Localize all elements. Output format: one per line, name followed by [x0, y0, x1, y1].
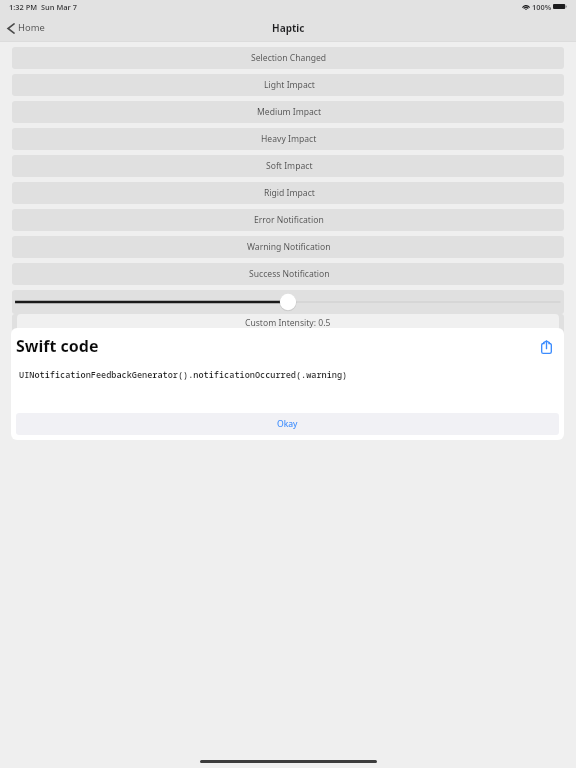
button[interactable]: Light Impact — [12, 74, 564, 96]
staticText: Error Notification — [254, 214, 324, 226]
staticText: 100% — [532, 2, 552, 12]
button[interactable]: Selection Changed — [12, 47, 564, 69]
staticText: Okay — [277, 418, 298, 430]
staticText: Selection Changed — [251, 52, 327, 64]
button[interactable]: Warning Notification — [12, 236, 564, 258]
staticText: Heavy Impact — [261, 133, 317, 145]
button[interactable]: Rigid Impact — [12, 182, 564, 204]
button[interactable]: Okay — [16, 413, 559, 435]
button[interactable]: Home — [7, 22, 45, 35]
staticText: 1:32 PM — [9, 2, 38, 12]
button[interactable]: Heavy Impact — [12, 128, 564, 150]
staticText: Soft Impact — [266, 160, 313, 172]
staticText: Home — [18, 21, 45, 34]
staticText: Success Notification — [249, 268, 330, 280]
button[interactable]: Success Notification — [12, 263, 564, 285]
staticText: Custom Intensity: 0.5 — [245, 317, 331, 329]
button[interactable]: Soft Impact — [12, 155, 564, 177]
staticText: Rigid Impact — [264, 187, 315, 199]
button[interactable]: Custom intensity slider — [12, 290, 564, 314]
button[interactable]: Medium Impact — [12, 101, 564, 123]
button[interactable]: Share — [535, 336, 557, 358]
staticText: Medium Impact — [257, 106, 322, 118]
staticText: Sun Mar 7 — [41, 2, 77, 12]
staticText: UINotificationFeedbackGenerator().notifi… — [19, 369, 348, 381]
staticText: Warning Notification — [247, 241, 331, 253]
staticText: Light Impact — [264, 79, 315, 91]
staticText: Haptic — [272, 21, 305, 35]
button[interactable]: Error Notification — [12, 209, 564, 231]
staticText: Swift code — [16, 335, 99, 357]
